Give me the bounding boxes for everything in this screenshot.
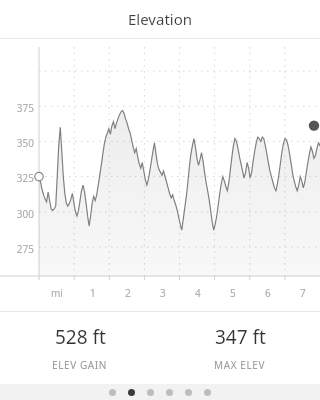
- button[interactable]: Page 1: [109, 389, 116, 396]
- staticText: 300: [8, 207, 34, 221]
- staticText: 347 ft: [215, 324, 266, 350]
- staticText: 325: [8, 171, 34, 185]
- staticText: 1: [90, 286, 96, 300]
- staticText: 528 ft: [55, 324, 106, 350]
- staticText: MAX ELEV: [214, 358, 266, 372]
- staticText: 375: [8, 101, 34, 115]
- staticText: 275: [8, 242, 34, 256]
- button[interactable]: Page 6: [204, 389, 211, 396]
- button[interactable]: Page 5: [185, 389, 192, 396]
- button[interactable]: 347 ft: [160, 312, 320, 372]
- staticText: 5: [230, 286, 236, 300]
- staticText: 7: [300, 286, 306, 300]
- staticText: mi: [51, 286, 63, 300]
- button[interactable]: 528 ft: [0, 312, 160, 372]
- staticText: 4: [195, 286, 201, 300]
- staticText: 2: [125, 286, 131, 300]
- staticText: 3: [160, 286, 166, 300]
- button[interactable]: Page 2: [128, 389, 135, 396]
- staticText: 6: [265, 286, 271, 300]
- staticText: ELEV GAIN: [52, 358, 108, 372]
- staticText: Elevation: [128, 9, 193, 29]
- button[interactable]: Page 3: [147, 389, 154, 396]
- staticText: 350: [8, 136, 34, 150]
- button[interactable]: Elevation chart: [0, 39, 320, 311]
- button[interactable]: Page 4: [166, 389, 173, 396]
